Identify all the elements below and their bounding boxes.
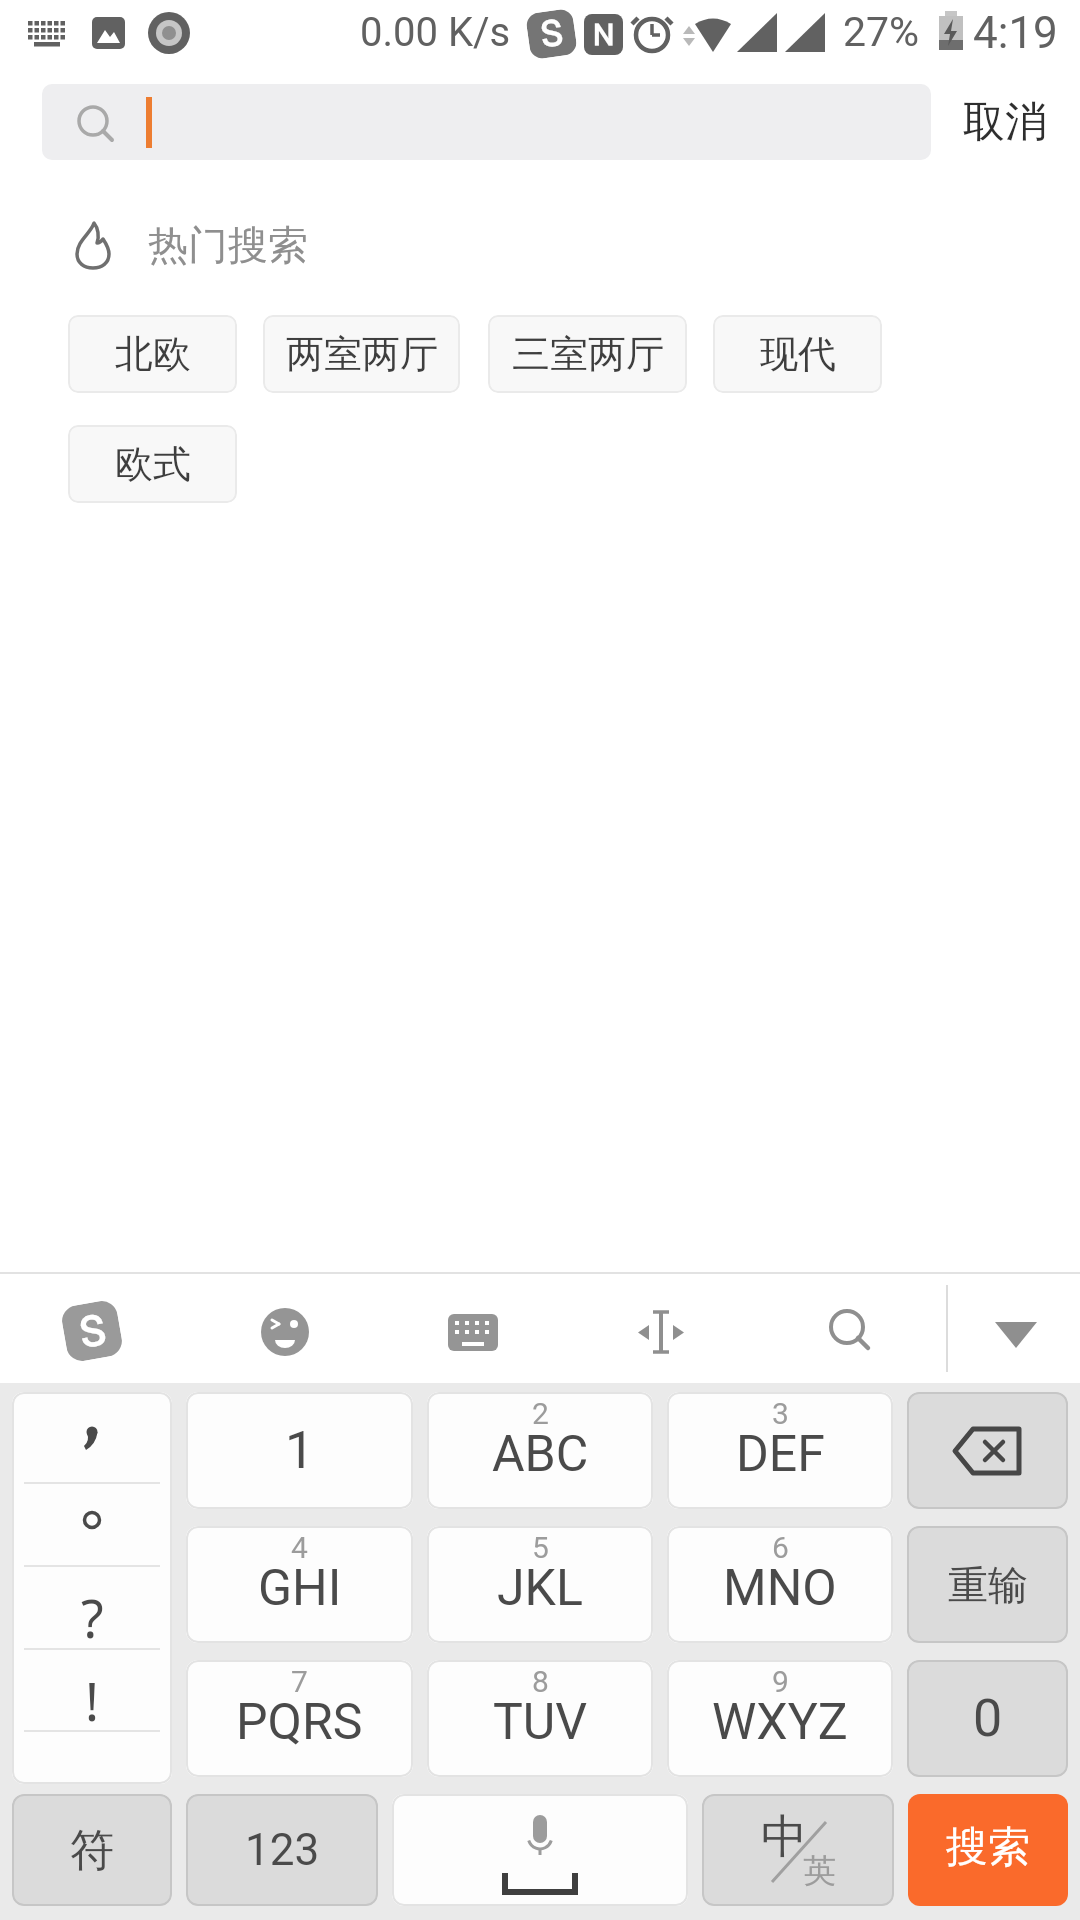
button[interactable]: 欧式 [68, 425, 237, 503]
staticText: 欧式 [115, 440, 191, 488]
staticText: N [593, 17, 615, 52]
button[interactable] [392, 1794, 688, 1906]
button[interactable] [985, 1297, 1055, 1367]
staticText: 搜索 [946, 1821, 1030, 1874]
staticText: 8 [532, 1664, 549, 1699]
staticText: 1 [285, 1420, 315, 1481]
button[interactable] [628, 1297, 698, 1367]
button[interactable]: 2 [427, 1392, 653, 1509]
staticText: GHI [258, 1559, 342, 1618]
button[interactable]: 北欧 [68, 315, 237, 393]
button[interactable]: 三室两厅 [488, 315, 687, 393]
button[interactable]: 3 [667, 1392, 893, 1509]
button[interactable]: S [60, 1299, 124, 1363]
staticText: 两室两厅 [286, 330, 438, 378]
staticText: 重输 [948, 1560, 1028, 1610]
button[interactable]: 符 [12, 1794, 172, 1906]
staticText: 2 [532, 1396, 549, 1431]
staticText: 9 [772, 1664, 789, 1699]
button[interactable]: 123 [186, 1794, 378, 1906]
button[interactable]: 现代 [713, 315, 882, 393]
button[interactable]: 中 [702, 1794, 894, 1906]
staticText: 4:19 [973, 7, 1058, 59]
button[interactable]: 1 [186, 1392, 413, 1509]
staticText: 热门搜索 [148, 220, 308, 270]
button[interactable] [815, 1297, 885, 1367]
staticText: 0 [973, 1688, 1003, 1749]
staticText: 北欧 [115, 330, 191, 378]
button[interactable]: 重输 [907, 1526, 1068, 1643]
staticText: PQRS [236, 1693, 363, 1752]
button[interactable]: 4 [186, 1526, 413, 1643]
staticText: DEF [736, 1425, 825, 1484]
button[interactable]: 5 [427, 1526, 653, 1643]
staticText: 现代 [760, 330, 836, 378]
button[interactable] [907, 1392, 1068, 1509]
staticText: 27% [843, 8, 920, 56]
staticText: 6 [772, 1530, 789, 1565]
button[interactable] [250, 1297, 320, 1367]
button[interactable]: 两室两厅 [263, 315, 460, 393]
staticText: 5 [532, 1530, 549, 1565]
staticText: JKL [497, 1559, 583, 1618]
staticText: 中 [761, 1808, 807, 1866]
staticText: 三室两厅 [512, 330, 664, 378]
button[interactable]: ? [12, 1392, 172, 1784]
staticText: 7 [291, 1664, 308, 1699]
staticText: MNO [723, 1559, 837, 1618]
staticText: WXYZ [712, 1693, 848, 1752]
staticText: ? [81, 1582, 104, 1648]
button[interactable]: 取消 [950, 84, 1060, 160]
button[interactable]: 8 [427, 1660, 653, 1777]
staticText: ! [85, 1665, 99, 1731]
staticText: 英 [803, 1850, 836, 1892]
button[interactable]: 搜索 [908, 1794, 1068, 1906]
staticText: 取消 [963, 96, 1047, 149]
staticText: 0.00 K/s [360, 9, 511, 56]
button[interactable]: 7 [186, 1660, 413, 1777]
staticText: ABC [492, 1425, 589, 1484]
button[interactable] [42, 84, 931, 160]
staticText: 3 [772, 1396, 789, 1431]
button[interactable] [438, 1297, 508, 1367]
button[interactable]: 0 [907, 1660, 1068, 1777]
staticText: 符 [70, 1823, 114, 1878]
staticText: 4 [291, 1530, 308, 1565]
staticText: S [538, 12, 566, 56]
staticText: S [76, 1305, 109, 1358]
staticText: 123 [245, 1824, 320, 1876]
button[interactable]: 9 [667, 1660, 893, 1777]
staticText: TUV [493, 1693, 588, 1752]
button[interactable]: 6 [667, 1526, 893, 1643]
